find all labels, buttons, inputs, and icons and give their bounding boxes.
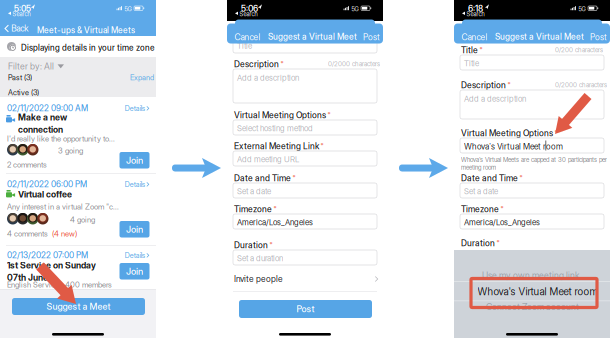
staticText: 0/2000 characters	[328, 60, 380, 68]
staticText: *	[500, 204, 503, 213]
staticText: Duration	[461, 238, 495, 248]
staticText: Meet-ups & Virtual Meets	[37, 25, 135, 35]
button[interactable]: Join	[119, 152, 149, 168]
staticText: *	[554, 128, 557, 137]
staticText: America/Los_Angeles	[237, 217, 313, 227]
staticText: Set a duration	[237, 253, 283, 263]
button[interactable]: Back	[2, 21, 31, 36]
staticText: Details	[125, 251, 145, 260]
button[interactable]: Filter by: All	[6, 59, 66, 74]
staticText: 1st Service on Sunday	[7, 260, 96, 271]
staticText: Whova's Virtual Meet room	[477, 285, 598, 298]
staticText: *	[273, 204, 276, 213]
staticText: Make a new	[18, 112, 67, 123]
staticText: Timezone	[461, 204, 499, 214]
staticText: *	[327, 110, 330, 119]
staticText: Description	[234, 59, 279, 69]
staticText: 4 going	[70, 215, 95, 224]
staticText: Search	[239, 11, 257, 18]
staticText: Displaying details in your time zone	[21, 43, 155, 53]
staticText: 2 comments	[7, 160, 47, 169]
staticText: 6:18	[468, 3, 483, 14]
staticText: Set a date	[464, 186, 498, 196]
staticText: Timezone	[234, 204, 272, 214]
staticText: *	[320, 141, 323, 150]
staticText: 02/11/2022 09:00 AM	[7, 103, 88, 113]
button[interactable]: Cancel	[458, 29, 490, 45]
staticText: Virtual Meeting Options	[234, 110, 326, 120]
staticText: *	[280, 59, 283, 68]
button[interactable]: Suggest a Meet	[12, 298, 145, 315]
staticText: Past (3)	[8, 73, 32, 82]
staticText: 02/13/2022 07:00 PM	[7, 250, 88, 260]
staticText: meeting room	[461, 164, 496, 171]
staticText: 0/2000 characters	[555, 81, 607, 89]
button[interactable]: Join	[119, 263, 149, 279]
staticText: Post	[363, 32, 380, 42]
button[interactable]: Details	[123, 179, 151, 190]
staticText: Title	[461, 45, 478, 55]
staticText: Join	[126, 224, 143, 235]
staticText: 5:06	[241, 3, 258, 14]
staticText: Add meeting URL	[237, 154, 299, 164]
button[interactable]: Expand	[128, 73, 156, 82]
staticText: 4 comments	[7, 229, 48, 238]
staticText: Title	[237, 41, 252, 51]
button[interactable]: Details	[123, 250, 151, 261]
button[interactable]: Join	[119, 221, 149, 237]
staticText: Join	[126, 266, 143, 277]
staticText: Virtual coffee	[18, 189, 72, 200]
staticText: Expand	[130, 73, 154, 82]
button[interactable]: Post	[239, 300, 372, 318]
staticText: *	[269, 240, 272, 249]
staticText: Any interest in a virtual Zoom "c...	[7, 202, 119, 211]
staticText: Title	[464, 58, 479, 68]
staticText: Add a description	[464, 94, 526, 104]
staticText: *	[496, 238, 499, 247]
button[interactable]: Cancel	[231, 29, 263, 45]
staticText: Set a date	[237, 186, 271, 196]
staticText: 5G	[351, 6, 358, 13]
staticText: Search	[466, 11, 484, 18]
staticText: Post	[590, 32, 607, 42]
staticText: *	[507, 80, 510, 89]
staticText: Filter by: All	[8, 61, 54, 72]
staticText: Virtual Meeting Options	[461, 128, 553, 138]
staticText: Suggest a Meet	[46, 301, 110, 312]
staticText: Details	[125, 180, 145, 189]
staticText: Search	[12, 11, 30, 18]
staticText: Post	[296, 303, 314, 314]
staticText: connection	[18, 124, 63, 135]
staticText: Whova's Virtual Meet room	[464, 141, 563, 151]
staticText: Duration	[234, 240, 268, 250]
staticText: Join	[126, 155, 143, 166]
staticText: 02/11/2022 06:00 PM	[7, 179, 87, 189]
staticText: Cancel	[234, 32, 260, 42]
staticText: Active (3)	[8, 88, 39, 97]
staticText: Back	[11, 23, 28, 34]
staticText: *	[479, 45, 482, 54]
staticText: 5G	[578, 6, 585, 13]
staticText: Suggest a Virtual Meet	[268, 31, 357, 42]
button[interactable]: Post	[360, 29, 383, 45]
staticText: Whova's Virtual Meets are capped at 30 p…	[461, 156, 607, 163]
staticText: Add a description	[237, 73, 299, 83]
button[interactable]: Invite people	[234, 272, 378, 286]
staticText: Details	[125, 104, 145, 113]
staticText: 5:05	[14, 3, 31, 14]
staticText: 07th June.	[7, 272, 50, 283]
staticText: English Service · 400 members	[7, 280, 112, 289]
staticText: Connect Zoom account	[486, 301, 579, 312]
staticText: Invite people	[234, 274, 283, 284]
staticText: 3 going	[58, 146, 83, 155]
staticText: 5G	[124, 6, 131, 13]
staticText: Date and Time	[461, 173, 518, 183]
staticText: 0/200 characters	[555, 46, 603, 54]
staticText: Suggest a Virtual Meet	[495, 31, 584, 42]
button[interactable]: Post	[587, 29, 610, 45]
staticText: *	[519, 173, 522, 182]
button[interactable]: Details	[123, 103, 151, 114]
staticText: External Meeting Link	[234, 141, 319, 151]
staticText: *	[292, 173, 295, 182]
staticText: Description	[461, 80, 506, 90]
